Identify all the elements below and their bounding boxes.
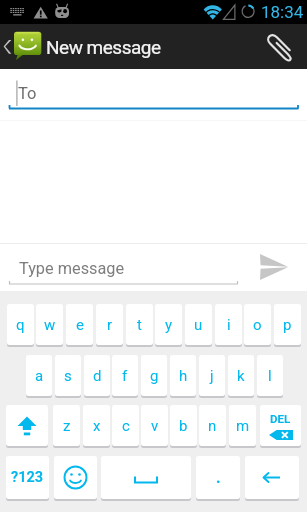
- staticText: p: [283, 316, 292, 334]
- button[interactable]: Shift: [6, 405, 48, 446]
- staticText: t: [137, 316, 142, 334]
- staticText: y: [165, 316, 173, 334]
- button[interactable]: o: [244, 304, 271, 345]
- staticText: c: [122, 417, 130, 435]
- staticText: Type message: [19, 259, 125, 278]
- button[interactable]: r: [96, 304, 123, 345]
- button[interactable]: q: [7, 304, 34, 345]
- button[interactable]: x: [83, 405, 110, 446]
- button[interactable]: Space: [101, 456, 191, 499]
- staticText: b: [179, 417, 188, 435]
- staticText: v: [151, 417, 159, 435]
- button[interactable]: .: [196, 456, 240, 499]
- button[interactable]: y: [155, 304, 182, 345]
- button[interactable]: g: [141, 355, 167, 396]
- button[interactable]: f: [112, 355, 138, 396]
- staticText: w: [44, 316, 56, 334]
- button[interactable]: c: [112, 405, 139, 446]
- staticText: n: [208, 417, 217, 435]
- button[interactable]: Emoji: [54, 456, 97, 499]
- staticText: k: [237, 367, 245, 385]
- button[interactable]: Send: [252, 247, 296, 287]
- staticText: ?123: [11, 469, 44, 486]
- staticText: l: [268, 367, 272, 385]
- staticText: a: [35, 367, 44, 385]
- button[interactable]: w: [36, 304, 63, 345]
- staticText: z: [63, 417, 71, 435]
- button[interactable]: v: [141, 405, 168, 446]
- button[interactable]: Attach: [262, 24, 307, 69]
- staticText: m: [236, 417, 250, 435]
- staticText: u: [194, 316, 203, 334]
- button[interactable]: b: [170, 405, 197, 446]
- staticText: 18:34: [261, 2, 304, 22]
- button[interactable]: Delete: [260, 405, 301, 446]
- button[interactable]: n: [199, 405, 226, 446]
- button[interactable]: m: [229, 405, 256, 446]
- staticText: g: [150, 367, 159, 385]
- staticText: o: [253, 316, 262, 334]
- button[interactable]: ?123: [6, 456, 49, 499]
- button[interactable]: s: [55, 355, 81, 396]
- staticText: f: [122, 367, 128, 385]
- button[interactable]: e: [66, 304, 93, 345]
- button[interactable]: d: [84, 355, 110, 396]
- staticText: x: [93, 417, 101, 435]
- button[interactable]: p: [274, 304, 301, 345]
- staticText: q: [16, 316, 25, 334]
- staticText: To: [18, 84, 37, 103]
- button[interactable]: New message: [0, 24, 307, 69]
- button[interactable]: l: [257, 355, 283, 396]
- staticText: e: [76, 316, 84, 334]
- button[interactable]: Enter: [245, 456, 299, 499]
- staticText: j: [210, 367, 214, 385]
- staticText: i: [227, 316, 231, 334]
- button[interactable]: u: [185, 304, 212, 345]
- staticText: .: [216, 468, 221, 487]
- button[interactable]: t: [126, 304, 153, 345]
- button[interactable]: a: [26, 355, 52, 396]
- staticText: h: [179, 367, 188, 385]
- staticText: d: [93, 367, 102, 385]
- staticText: s: [64, 367, 72, 385]
- staticText: New message: [46, 36, 161, 58]
- button[interactable]: h: [170, 355, 196, 396]
- button[interactable]: z: [53, 405, 80, 446]
- staticText: DEL: [270, 412, 291, 425]
- button[interactable]: i: [215, 304, 242, 345]
- staticText: r: [107, 316, 113, 334]
- button[interactable]: k: [228, 355, 254, 396]
- button[interactable]: j: [199, 355, 225, 396]
